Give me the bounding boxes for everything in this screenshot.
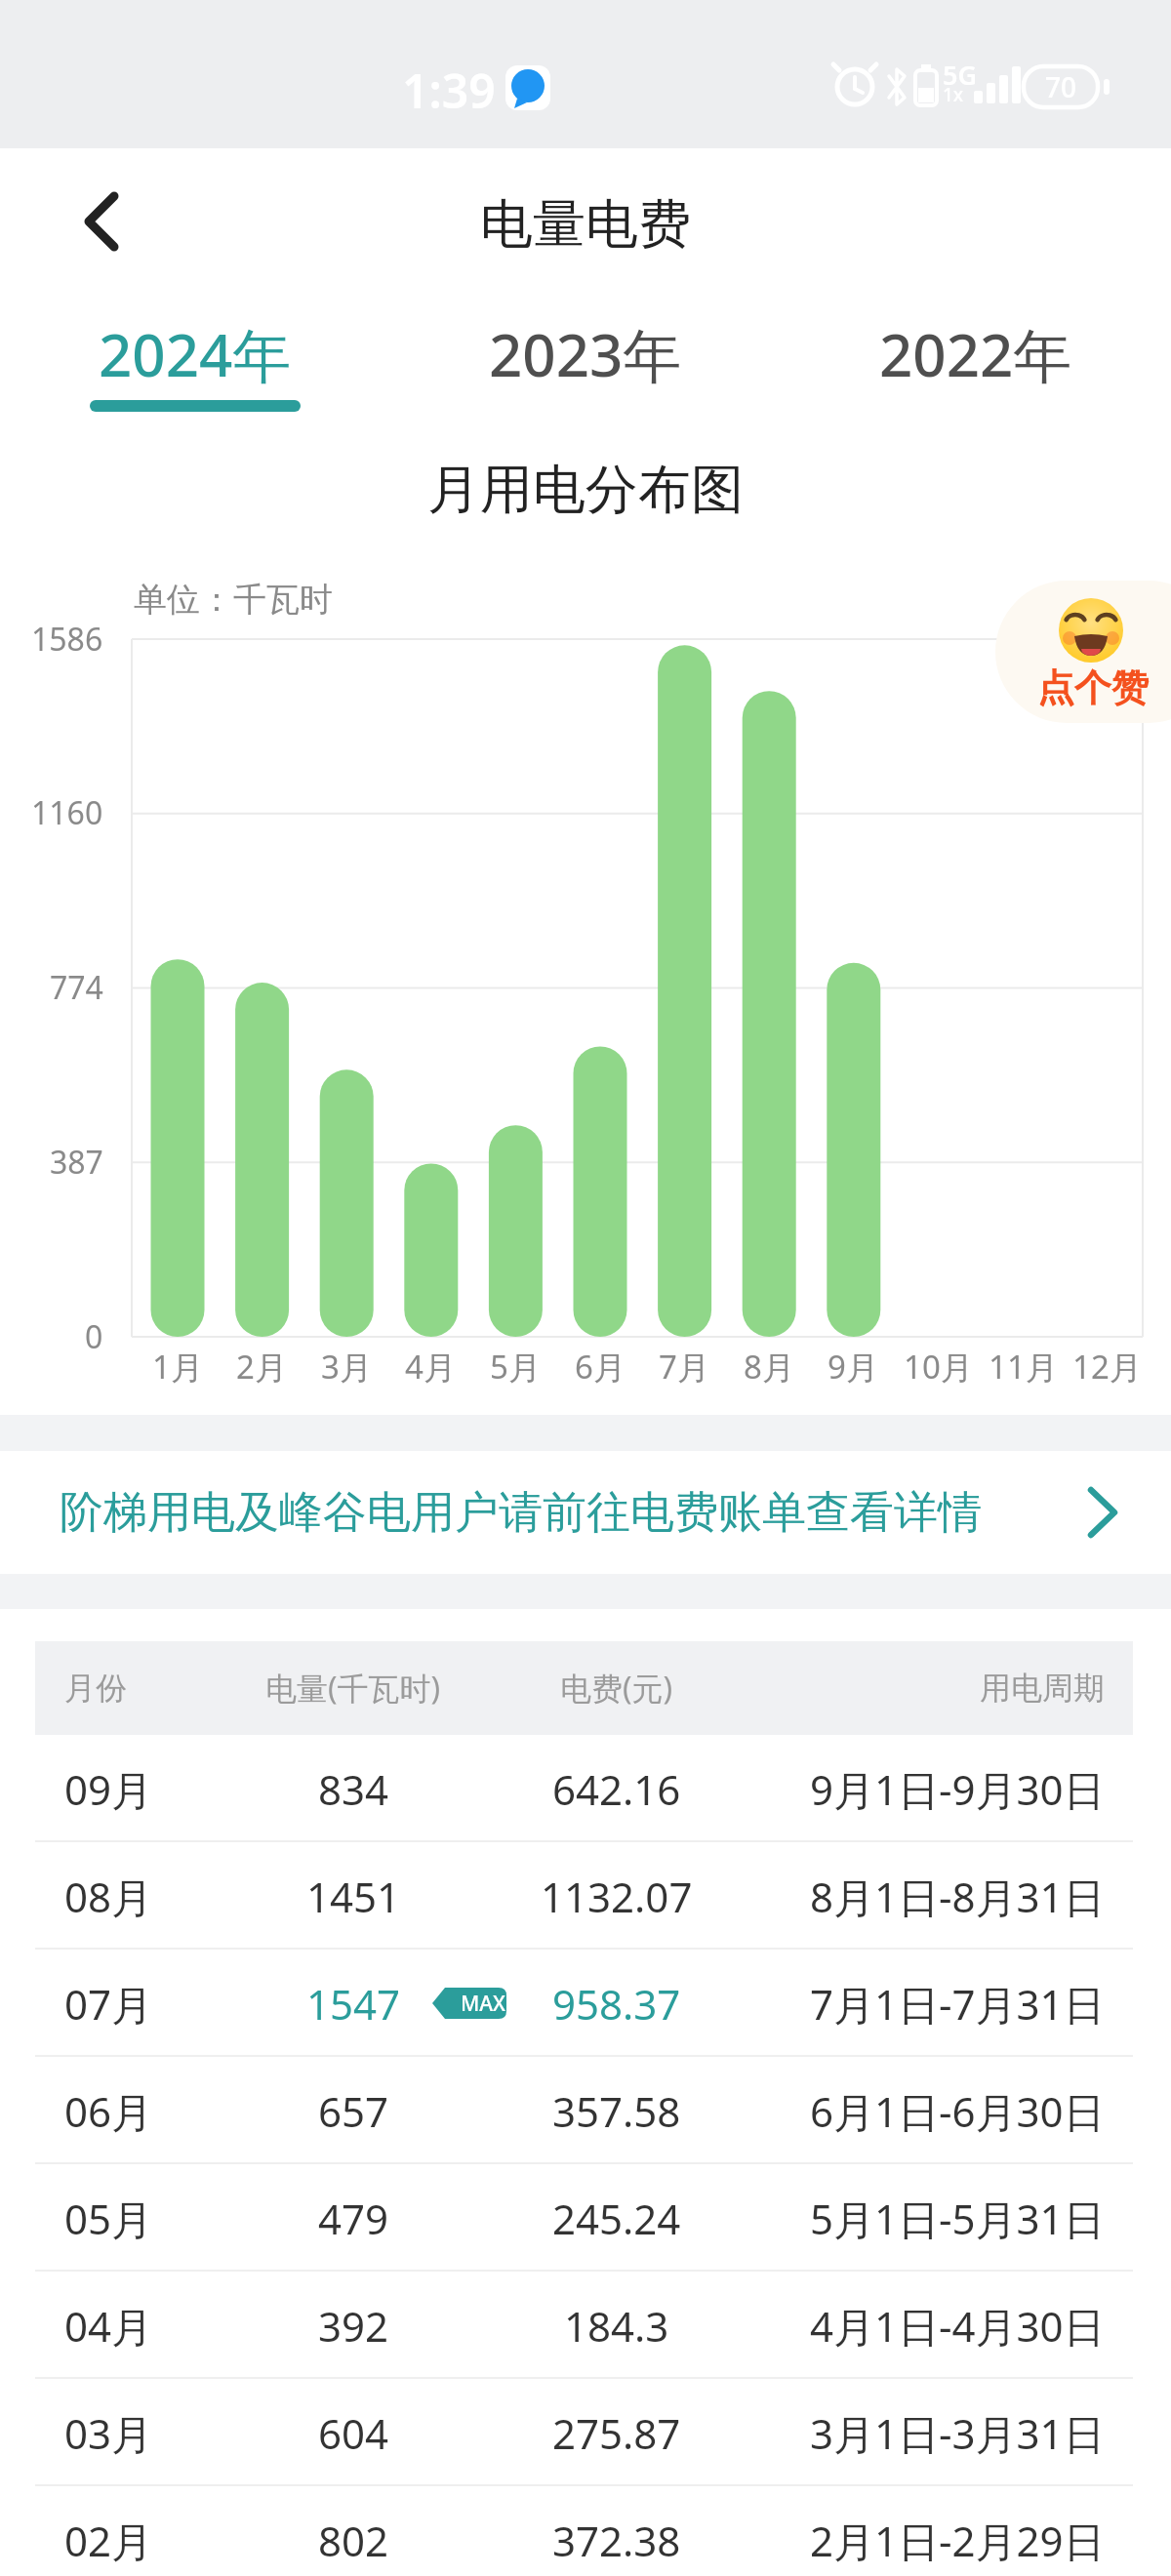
staticText: 03月 [64, 2405, 153, 2461]
staticText: 70 [1045, 68, 1077, 105]
staticText: 06月 [64, 2083, 153, 2139]
staticText: 774 [50, 966, 103, 1009]
staticText: 657 [318, 2083, 389, 2139]
staticText: 05月 [64, 2191, 153, 2246]
staticText: 9月1日-9月30日 [810, 1761, 1105, 1817]
staticText: 387 [50, 1141, 103, 1184]
staticText: 电费(元) [560, 1667, 673, 1710]
staticText: 2023年 [489, 314, 682, 394]
staticText: 7月 [659, 1345, 709, 1389]
staticText: 电量(千瓦时) [265, 1667, 441, 1710]
staticText: 月份 [64, 1669, 127, 1708]
staticText: 275.87 [552, 2405, 681, 2461]
staticText: 9月 [828, 1345, 878, 1389]
staticText: MAX [461, 1990, 505, 2018]
staticText: 4月1日-4月30日 [810, 2298, 1105, 2354]
staticText: 1月 [152, 1345, 203, 1389]
button[interactable] [59, 178, 146, 265]
staticText: 单位：千瓦时 [134, 579, 333, 621]
staticText: 4月 [405, 1345, 456, 1389]
staticText: 1x [943, 82, 964, 105]
staticText: 1:39 [402, 59, 496, 121]
staticText: 07月 [64, 1976, 153, 2032]
staticText: 点个赞 [1037, 664, 1149, 711]
staticText: 1160 [31, 791, 103, 834]
staticText: 3月 [321, 1345, 372, 1389]
button[interactable]: 05月 [0, 2164, 1171, 2272]
staticText: 184.3 [564, 2298, 669, 2354]
staticText: 09月 [64, 1761, 153, 1817]
button[interactable]: 03月 [0, 2379, 1171, 2486]
staticText: 2月 [236, 1345, 287, 1389]
staticText: 1547 [306, 1976, 401, 2032]
staticText: 5月1日-5月31日 [810, 2191, 1105, 2246]
staticText: 958.37 [552, 1976, 681, 2032]
staticText: 月用电分布图 [427, 457, 744, 519]
button[interactable]: 04月 [0, 2272, 1171, 2379]
staticText: 245.24 [552, 2191, 681, 2246]
staticText: 802 [318, 2513, 389, 2568]
button[interactable]: 08月 [0, 1842, 1171, 1950]
staticText: 电量电费 [480, 191, 691, 254]
staticText: 02月 [64, 2513, 153, 2568]
staticText: 642.16 [552, 1761, 681, 1817]
button[interactable]: 02月 [0, 2486, 1171, 2576]
staticText: 604 [318, 2405, 389, 2461]
button[interactable]: 07月 [0, 1950, 1171, 2057]
staticText: 0 [85, 1315, 103, 1358]
staticText: 6月 [575, 1345, 626, 1389]
staticText: 357.58 [552, 2083, 681, 2139]
staticText: 阶梯用电及峰谷电用户请前往电费账单查看详情 [60, 1485, 982, 1541]
staticText: 1132.07 [541, 1869, 693, 1924]
button[interactable]: 2023年 [410, 295, 761, 422]
staticText: 834 [318, 1761, 389, 1817]
staticText: 04月 [64, 2298, 153, 2354]
staticText: 3月1日-3月31日 [810, 2405, 1105, 2461]
staticText: 392 [318, 2298, 389, 2354]
button[interactable]: 2024年 [20, 295, 371, 422]
staticText: 8月 [744, 1345, 794, 1389]
staticText: 08月 [64, 1869, 153, 1924]
staticText: 6月1日-6月30日 [810, 2083, 1105, 2139]
staticText: 2022年 [879, 314, 1072, 394]
staticText: 1586 [31, 618, 103, 661]
staticText: 用电周期 [980, 1669, 1105, 1708]
staticText: 5月 [490, 1345, 541, 1389]
staticText: 479 [318, 2191, 389, 2246]
staticText: 2024年 [99, 314, 292, 394]
staticText: 12月 [1072, 1345, 1142, 1389]
staticText: 7月1日-7月31日 [810, 1976, 1105, 2032]
button[interactable]: 09月 [0, 1735, 1171, 1842]
staticText: 10月 [904, 1345, 973, 1389]
staticText: 1451 [306, 1869, 401, 1924]
button[interactable]: 阶梯用电及峰谷电用户请前往电费账单查看详情 [0, 1451, 1171, 1574]
button[interactable]: 点个赞 [995, 581, 1171, 723]
staticText: 5G [943, 57, 978, 88]
button[interactable]: 2022年 [800, 295, 1151, 422]
staticText: 8月1日-8月31日 [810, 1869, 1105, 1924]
staticText: 2月1日-2月29日 [810, 2513, 1105, 2568]
button[interactable]: 06月 [0, 2057, 1171, 2164]
staticText: 372.38 [552, 2513, 681, 2568]
staticText: 11月 [989, 1345, 1058, 1389]
